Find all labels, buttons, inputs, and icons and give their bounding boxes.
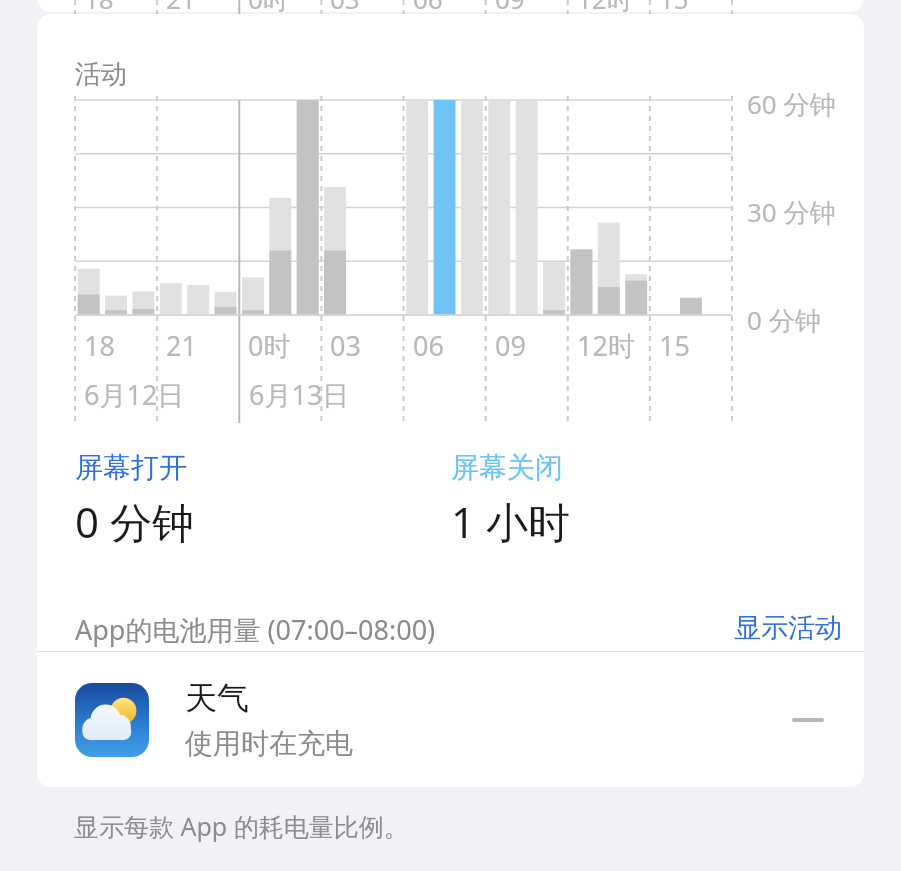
staticText: 03 [330, 327, 361, 364]
button[interactable]: 屏幕关闭 [451, 450, 570, 550]
staticText: 06 [413, 0, 443, 16]
staticText: 18 [84, 327, 115, 364]
staticText: 09 [495, 0, 525, 16]
staticText: 显示活动 [734, 611, 842, 645]
staticText: 60 分钟 [747, 86, 836, 122]
staticText: 18 [84, 0, 114, 16]
staticText: 使用时在充电 [185, 726, 353, 761]
staticText: 显示每款 App 的耗电量比例。 [74, 809, 409, 843]
staticText: 0 分钟 [75, 493, 194, 550]
staticText: 6月13日 [249, 376, 350, 413]
staticText: 21 [166, 0, 196, 16]
staticText: 天气 [185, 678, 249, 718]
staticText: App的电池用量 (07:00–08:00) [75, 611, 436, 648]
staticText: 15 [659, 0, 689, 16]
staticText: 1 小时 [451, 493, 570, 550]
staticText: 屏幕关闭 [451, 450, 563, 485]
button[interactable]: 天气 App 图标 [37, 652, 864, 787]
staticText: 12时 [577, 0, 633, 17]
staticText: 屏幕打开 [75, 450, 187, 485]
staticText: 21 [166, 327, 197, 364]
staticText: 0 分钟 [747, 302, 821, 338]
staticText: 03 [330, 0, 360, 16]
staticText: 活动 [75, 58, 127, 91]
staticText: 09 [495, 327, 526, 364]
staticText: 0时 [248, 327, 291, 364]
button[interactable]: 屏幕打开 [75, 450, 194, 550]
staticText: 6月12日 [84, 376, 185, 413]
staticText: 12时 [577, 327, 635, 364]
staticText: 30 分钟 [747, 194, 836, 230]
staticText: 15 [659, 327, 690, 364]
button[interactable]: 显示活动 [730, 603, 846, 653]
staticText: 06 [413, 327, 444, 364]
other: 天气 App 图标 [75, 683, 149, 757]
staticText: 0时 [248, 0, 289, 17]
